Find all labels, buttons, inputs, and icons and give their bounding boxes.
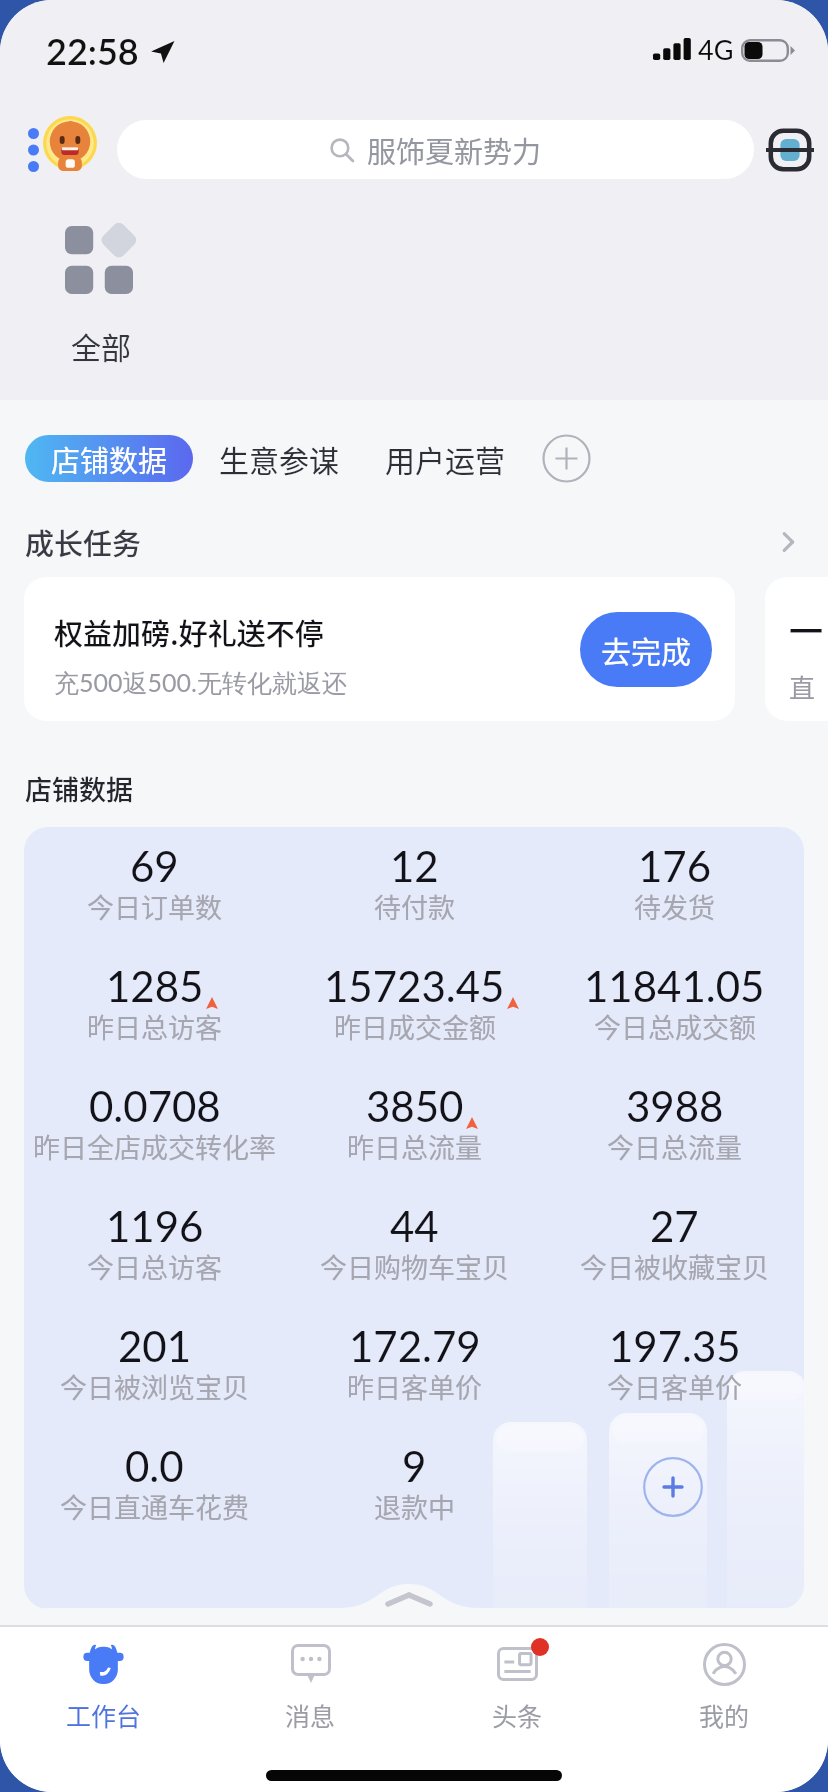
button[interactable] [544, 1441, 804, 1561]
staticText: 今日客单价 [607, 1367, 742, 1406]
staticText: 11841.05 [584, 961, 765, 1011]
staticText: 工作台 [66, 1697, 142, 1733]
button[interactable]: 15723.45 [284, 961, 544, 1081]
button[interactable]: 消息 [207, 1627, 414, 1740]
button[interactable]: 201 [24, 1321, 284, 1441]
button[interactable]: 成长任务 [0, 514, 828, 570]
staticText: 成长任务 [25, 521, 142, 563]
staticText: 直 [789, 668, 816, 706]
button[interactable]: 0.0708 [24, 1081, 284, 1201]
button[interactable]: 权益加磅.好礼送不停 [24, 577, 735, 721]
button[interactable]: 用户运营 [378, 435, 512, 482]
staticText: 9 [402, 1441, 427, 1491]
button[interactable]: 我的 [621, 1627, 828, 1740]
staticText: 充500返500.无转化就返还 [54, 667, 347, 699]
staticText: 今日总成交额 [594, 1007, 756, 1046]
staticText: 用户运营 [385, 437, 505, 480]
staticText: 4G [698, 33, 734, 65]
staticText: 201 [118, 1321, 192, 1371]
staticText: 店铺数据 [51, 438, 168, 480]
button[interactable]: 11841.05 [544, 961, 804, 1081]
staticText: 一 [789, 605, 823, 654]
staticText: 今日订单数 [87, 887, 222, 926]
button[interactable]: 去完成 [580, 612, 712, 687]
staticText: 权益加磅.好礼送不停 [54, 611, 324, 653]
button[interactable]: 69 [24, 841, 284, 961]
staticText: 今日购物车宝贝 [320, 1247, 509, 1286]
button[interactable]: 197.35 [544, 1321, 804, 1441]
button[interactable]: Add tab [543, 435, 590, 482]
staticText: 店铺数据 [25, 769, 133, 808]
button[interactable]: 生意参谋 [209, 435, 349, 482]
staticText: 我的 [699, 1697, 750, 1733]
button[interactable] [43, 116, 97, 170]
button[interactable]: 工作台 [0, 1627, 207, 1740]
staticText: 0.0708 [89, 1081, 221, 1131]
staticText: 去完成 [601, 628, 691, 671]
staticText: 15723.45 [324, 961, 505, 1011]
button[interactable]: 1196 [24, 1201, 284, 1321]
staticText: 待付款 [374, 887, 455, 926]
staticText: 今日被收藏宝贝 [580, 1247, 769, 1286]
button[interactable]: 172.79 [284, 1321, 544, 1441]
staticText: 昨日全店成交转化率 [33, 1127, 276, 1166]
staticText: 昨日客单价 [347, 1367, 482, 1406]
button[interactable]: 店铺数据 [25, 435, 193, 482]
button[interactable]: 服饰夏新势力 [117, 120, 754, 179]
staticText: 今日被浏览宝贝 [60, 1367, 249, 1406]
button[interactable]: 12 [284, 841, 544, 961]
staticText: 3988 [626, 1081, 724, 1131]
staticText: 197.35 [609, 1321, 741, 1371]
staticText: 27 [650, 1201, 699, 1251]
button[interactable]: 全部 [65, 226, 133, 367]
staticText: 昨日成交金额 [334, 1007, 496, 1046]
button[interactable]: 3850 [284, 1081, 544, 1201]
button[interactable]: 9 [284, 1441, 544, 1561]
button[interactable]: More [20, 127, 46, 173]
staticText: 今日直通车花费 [60, 1487, 249, 1526]
button[interactable]: 0.0 [24, 1441, 284, 1561]
staticText: 172.79 [349, 1321, 481, 1371]
staticText: 待发货 [634, 887, 715, 926]
staticText: 22:58 [46, 29, 139, 72]
staticText: 服饰夏新势力 [367, 129, 542, 171]
staticText: 12 [390, 841, 439, 891]
staticText: 昨日总流量 [347, 1127, 482, 1166]
button[interactable]: 176 [544, 841, 804, 961]
staticText: 退款中 [374, 1487, 455, 1526]
button[interactable]: 27 [544, 1201, 804, 1321]
staticText: 69 [130, 841, 179, 891]
staticText: 全部 [71, 324, 131, 367]
button[interactable]: Add metric [643, 1457, 703, 1517]
staticText: 头条 [492, 1697, 543, 1733]
staticText: 44 [390, 1201, 439, 1251]
button[interactable]: Scan [766, 126, 814, 174]
button[interactable]: 44 [284, 1201, 544, 1321]
staticText: 0.0 [125, 1441, 184, 1491]
staticText: 1196 [106, 1201, 204, 1251]
staticText: 1285 [106, 961, 204, 1011]
staticText: 昨日总访客 [87, 1007, 222, 1046]
button[interactable]: 3988 [544, 1081, 804, 1201]
button[interactable]: 头条 [414, 1627, 621, 1740]
staticText: 176 [638, 841, 712, 891]
staticText: 生意参谋 [219, 437, 339, 480]
staticText: 今日总流量 [607, 1127, 742, 1166]
staticText: 消息 [285, 1697, 336, 1733]
staticText: 今日总访客 [87, 1247, 222, 1286]
button[interactable]: 1285 [24, 961, 284, 1081]
button[interactable]: 一 [765, 577, 828, 721]
staticText: 3850 [366, 1081, 464, 1131]
